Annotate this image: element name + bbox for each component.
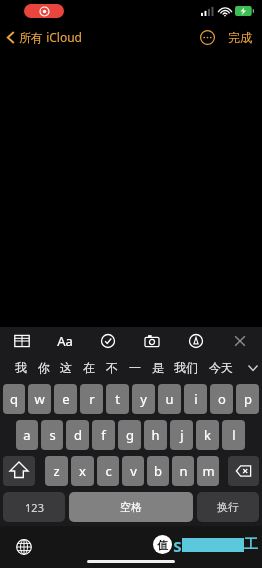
button[interactable]: Table — [0, 327, 43, 355]
button[interactable]: 你 — [38, 355, 50, 380]
staticText: d — [74, 426, 82, 444]
button[interactable]: Close keyboard — [218, 327, 262, 355]
button[interactable]: More candidates — [244, 355, 262, 380]
staticText: 在 — [83, 360, 95, 375]
button[interactable]: w — [28, 384, 51, 414]
staticText: e — [62, 390, 70, 408]
staticText: 是 — [152, 360, 164, 375]
button[interactable]: Camera — [130, 327, 174, 355]
button[interactable]: x — [71, 456, 94, 486]
staticText: 你 — [38, 360, 50, 375]
staticText: 所有 iCloud — [19, 29, 82, 45]
button[interactable]: More options — [196, 26, 219, 49]
button[interactable]: 空格 — [69, 492, 193, 522]
button[interactable]: c — [97, 456, 119, 486]
staticText: g — [126, 426, 134, 444]
button[interactable]: j — [170, 420, 193, 450]
staticText: o — [218, 390, 226, 408]
button[interactable]: i — [184, 384, 207, 414]
button[interactable]: d — [66, 420, 89, 450]
staticText: v — [130, 462, 137, 480]
staticText: r — [89, 390, 95, 408]
button[interactable]: 123 — [3, 492, 65, 522]
button[interactable]: 完成 — [226, 26, 254, 49]
staticText: k — [204, 426, 211, 444]
button[interactable]: t — [106, 384, 129, 414]
staticText: 123 — [25, 500, 44, 515]
button[interactable]: 换行 — [197, 492, 259, 522]
staticText: 完成 — [228, 30, 252, 45]
button[interactable]: u — [158, 384, 181, 414]
staticText: l — [232, 426, 236, 444]
staticText: m — [202, 462, 215, 480]
button[interactable]: r — [80, 384, 103, 414]
button[interactable]: 是 — [152, 355, 164, 380]
button[interactable]: e — [54, 384, 77, 414]
button[interactable]: s — [41, 420, 63, 450]
button[interactable]: b — [147, 456, 169, 486]
button[interactable]: 所有 iCloud — [0, 26, 88, 48]
button[interactable]: m — [197, 456, 219, 486]
button[interactable]: 一 — [129, 355, 141, 380]
staticText: 工 — [244, 536, 258, 553]
staticText: 空格 — [120, 500, 142, 514]
button[interactable]: n — [172, 456, 194, 486]
staticText: s — [49, 426, 56, 444]
staticText: 不 — [106, 360, 118, 375]
button[interactable]: 我 — [15, 355, 27, 380]
button[interactable]: Switch keyboard — [16, 539, 32, 555]
staticText: b — [154, 462, 162, 480]
button[interactable]: z — [45, 456, 68, 486]
button[interactable]: l — [222, 420, 245, 450]
staticText: 一 — [129, 360, 141, 375]
staticText: t — [115, 390, 120, 408]
button[interactable]: y — [132, 384, 155, 414]
staticText: c — [105, 462, 112, 480]
staticText: 今天 — [209, 360, 233, 375]
button[interactable]: q — [3, 384, 25, 414]
staticText: q — [10, 390, 18, 408]
staticText: f — [101, 426, 106, 444]
staticText: a — [23, 426, 31, 444]
button[interactable]: 不 — [106, 355, 118, 380]
button[interactable]: a — [16, 420, 38, 450]
staticText: x — [79, 462, 86, 480]
button[interactable]: Checklist — [86, 327, 130, 355]
staticText: u — [165, 390, 174, 408]
button[interactable]: Aa — [43, 327, 86, 355]
staticText: w — [34, 390, 45, 408]
staticText: 这 — [60, 360, 72, 375]
staticText: S — [173, 536, 182, 553]
button[interactable]: v — [122, 456, 144, 486]
staticText: z — [53, 462, 60, 480]
button[interactable]: Backspace — [228, 456, 259, 486]
button[interactable]: Shift — [3, 456, 35, 486]
staticText: 我 — [15, 360, 27, 375]
staticText: y — [140, 390, 147, 408]
button[interactable]: g — [118, 420, 141, 450]
button[interactable]: p — [236, 384, 259, 414]
staticText: n — [179, 462, 188, 480]
staticText: 我们 — [174, 360, 198, 375]
staticText: Aa — [57, 332, 73, 350]
button[interactable]: 在 — [83, 355, 95, 380]
staticText: 换行 — [217, 500, 239, 514]
staticText: p — [244, 390, 252, 408]
button[interactable]: k — [196, 420, 219, 450]
button[interactable]: Markup — [174, 327, 218, 355]
button[interactable]: f — [92, 420, 115, 450]
staticText: i — [194, 390, 198, 408]
staticText: h — [151, 426, 160, 444]
button[interactable]: 我们 — [174, 355, 198, 380]
staticText: 值 — [157, 538, 168, 552]
button[interactable]: 今天 — [209, 355, 233, 380]
staticText: j — [180, 426, 184, 444]
button[interactable]: o — [210, 384, 233, 414]
button[interactable]: h — [144, 420, 167, 450]
button[interactable]: 这 — [60, 355, 72, 380]
